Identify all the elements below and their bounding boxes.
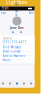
button[interactable]: Share Contact (0, 49, 33, 54)
staticText: Lightbox (5, 0, 27, 6)
staticText: Send Message (2, 45, 21, 49)
button[interactable]: Lists (0, 11, 7, 15)
button[interactable]: Tab 2 (13, 79, 20, 87)
staticText: Contact (15, 2, 18, 24)
staticText: Add to Favorites (2, 54, 24, 58)
button[interactable]: Notes (0, 58, 33, 62)
button[interactable]: mobile (0, 36, 33, 45)
button[interactable]: Tab 3 (20, 79, 27, 87)
staticText: mobile (2, 37, 12, 40)
staticText: (555) 010-4477 (2, 40, 26, 44)
staticText: Edit (28, 11, 33, 15)
button[interactable]: Tab 4 (27, 79, 34, 87)
staticText: Share Contact (2, 50, 20, 53)
button[interactable]: Edit (26, 11, 33, 15)
button[interactable]: Send Message (0, 45, 33, 49)
staticText: Jane Doe (10, 26, 24, 30)
staticText: 9:41 (2, 7, 9, 10)
button[interactable]: Tab 1 (6, 79, 13, 87)
staticText: Notes (2, 59, 10, 62)
staticText: Lists (0, 11, 5, 15)
button[interactable]: Call (11, 31, 14, 34)
button[interactable]: Add to Favorites (0, 54, 33, 58)
button[interactable]: Message (19, 31, 22, 34)
button[interactable]: Tab 0 (0, 79, 6, 87)
